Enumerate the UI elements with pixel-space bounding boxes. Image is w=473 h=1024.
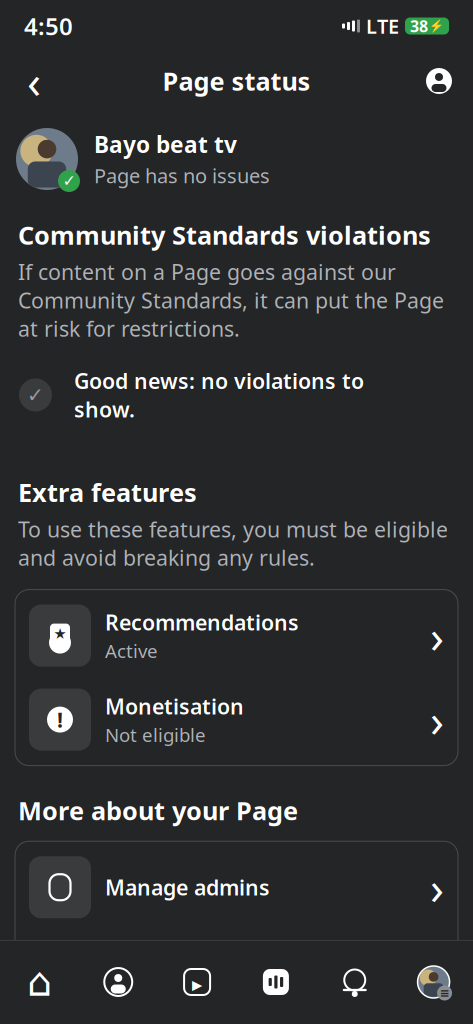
staticText: Not eligible <box>105 722 206 747</box>
staticText: ⌂ <box>27 959 52 1005</box>
staticText: ⚡ <box>429 19 444 33</box>
staticText: › <box>430 689 444 750</box>
button[interactable]: Friends <box>79 967 158 997</box>
button[interactable]: Manage admins <box>15 845 458 929</box>
staticText: › <box>430 857 444 917</box>
button[interactable]: Reels <box>158 967 236 997</box>
staticText: LTE <box>366 13 399 39</box>
button[interactable]: ! <box>15 678 458 762</box>
button[interactable]: Moderation Assist <box>15 929 458 1013</box>
staticText: ★ <box>53 625 66 642</box>
staticText: Monetisation <box>105 692 244 720</box>
staticText: Page status <box>162 64 310 98</box>
staticText: ✓ <box>62 172 75 190</box>
staticText: ‹ <box>27 51 41 111</box>
staticText: To use these features, you must be eligi… <box>18 515 448 572</box>
button[interactable]: ✓ <box>0 110 473 190</box>
staticText: 38 <box>410 15 428 37</box>
staticText: Recommendations <box>105 608 299 636</box>
staticText: 4:50 <box>24 10 73 42</box>
staticText: › <box>430 605 444 666</box>
staticText: More about your Page <box>18 794 298 827</box>
staticText: Page has no issues <box>94 162 270 189</box>
staticText: ≡ <box>440 986 450 1000</box>
staticText: If content on a Page goes against our Co… <box>18 258 444 343</box>
staticText: Good news: no violations to show. <box>74 367 364 423</box>
staticText: Moderation Assist <box>105 957 294 985</box>
staticText: ▶ <box>192 977 202 992</box>
button[interactable]: Professional dashboard <box>236 967 315 997</box>
staticText: ✓ <box>27 384 44 406</box>
button[interactable]: Home <box>0 967 79 997</box>
staticText: › <box>430 941 444 1001</box>
staticText: Community Standards violations <box>18 218 431 252</box>
button[interactable]: Back <box>12 59 56 103</box>
staticText: Bayo beat tv <box>94 129 237 159</box>
button[interactable]: Menu <box>394 966 473 998</box>
button[interactable]: Account <box>417 59 461 103</box>
button[interactable]: ★ <box>15 594 458 678</box>
staticText: Active <box>105 638 158 663</box>
button[interactable]: Notifications <box>315 967 394 997</box>
staticText: ! <box>57 705 63 734</box>
staticText: Extra features <box>18 475 197 509</box>
staticText: Manage admins <box>105 873 270 901</box>
